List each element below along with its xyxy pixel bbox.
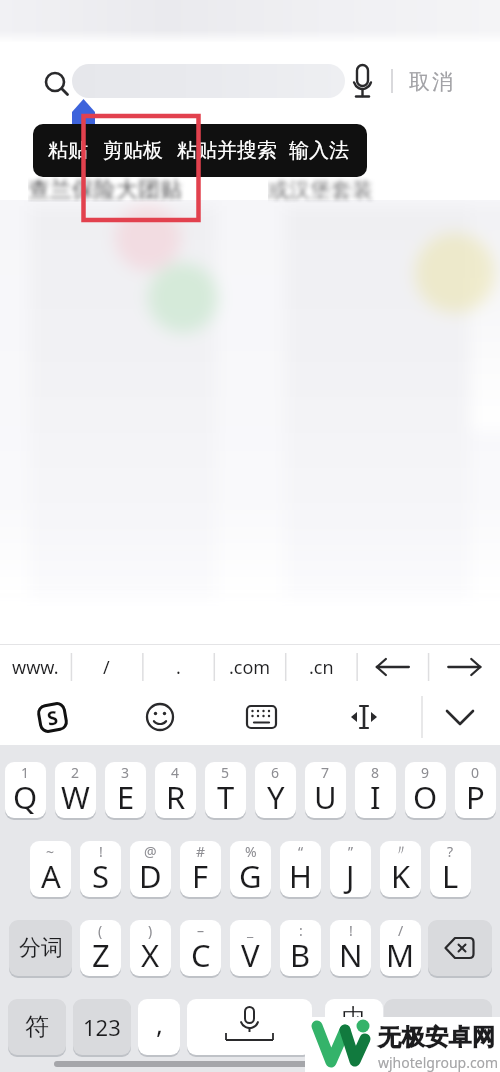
staticText: ” — [348, 842, 354, 861]
button[interactable]: 6 — [255, 762, 296, 818]
button[interactable]: ) — [130, 920, 171, 976]
button[interactable]: _ — [230, 920, 271, 976]
staticText: 2 — [71, 763, 80, 782]
staticText: , — [156, 1006, 163, 1041]
staticText: @ — [144, 842, 157, 861]
staticText: L — [442, 855, 459, 897]
staticText: ( — [98, 921, 103, 940]
button[interactable] — [357, 645, 428, 689]
staticText: wjhotelgroup.com — [378, 1053, 499, 1072]
staticText: _ — [247, 921, 254, 940]
staticText: P — [466, 776, 485, 818]
staticText: Q — [13, 776, 38, 818]
button[interactable]: 7 — [305, 762, 346, 818]
button[interactable]: ” — [330, 841, 371, 897]
button[interactable]: – — [180, 920, 221, 976]
button[interactable]: www. — [0, 645, 71, 689]
button[interactable] — [432, 690, 488, 744]
button[interactable]: 粘贴并搜索 — [177, 138, 277, 163]
staticText: / — [103, 655, 110, 680]
button[interactable] — [233, 690, 289, 744]
button[interactable]: 3 — [105, 762, 146, 818]
button[interactable] — [429, 645, 500, 689]
staticText: B — [290, 934, 311, 976]
staticText: T — [217, 776, 235, 818]
button[interactable]: : — [280, 920, 321, 976]
staticText: D — [139, 855, 162, 897]
button[interactable]: ( — [80, 920, 121, 976]
staticText: 取消 — [408, 69, 454, 95]
staticText: / — [398, 921, 404, 940]
button[interactable]: 4 — [155, 762, 196, 818]
button[interactable]: % — [230, 841, 271, 897]
button[interactable]: 〃 — [380, 841, 421, 897]
staticText: K — [391, 855, 411, 897]
button[interactable]: , — [138, 999, 180, 1055]
staticText: 分词 — [19, 934, 63, 962]
staticText: ! — [99, 842, 103, 861]
staticText: S — [92, 855, 110, 897]
button[interactable]: 粘贴 — [48, 138, 88, 163]
staticText: 无极安卓网 — [378, 1023, 496, 1052]
staticText: C — [191, 934, 211, 976]
button[interactable]: 9 — [405, 762, 446, 818]
button[interactable] — [384, 999, 492, 1055]
button[interactable]: ~ — [30, 841, 71, 897]
staticText: 或汉堡套装 — [268, 177, 373, 203]
staticText: .com — [229, 655, 271, 680]
button[interactable]: 2 — [55, 762, 96, 818]
staticText: ! — [349, 921, 353, 940]
staticText: 6 — [271, 763, 280, 782]
staticText: 中 — [342, 1003, 366, 1033]
staticText: ~ — [46, 842, 55, 861]
button[interactable] — [336, 690, 392, 744]
button[interactable]: .cn — [286, 645, 357, 689]
button[interactable]: 123 — [73, 999, 131, 1055]
button[interactable]: 符 — [8, 999, 66, 1055]
staticText: S — [45, 704, 60, 732]
button[interactable]: # — [180, 841, 221, 897]
staticText: A — [41, 855, 61, 897]
staticText: # — [196, 842, 206, 861]
button[interactable] — [428, 920, 492, 976]
staticText: W — [61, 776, 90, 818]
button[interactable]: 5 — [205, 762, 246, 818]
button[interactable] — [72, 64, 345, 98]
staticText: F — [192, 855, 209, 897]
staticText: 查兰保险大团贴 — [28, 176, 182, 202]
staticText: N — [339, 934, 363, 976]
button[interactable]: / — [71, 645, 142, 689]
button[interactable]: 取消 — [408, 69, 454, 95]
button[interactable]: ? — [430, 841, 471, 897]
staticText: ? — [447, 842, 454, 861]
button[interactable]: ! — [80, 841, 121, 897]
button[interactable]: . — [143, 645, 214, 689]
button[interactable]: “ — [280, 841, 321, 897]
staticText: Y — [267, 776, 285, 818]
staticText: O — [413, 776, 438, 818]
staticText: % — [245, 842, 257, 861]
button[interactable]: 1 — [5, 762, 46, 818]
button[interactable]: @ — [130, 841, 171, 897]
staticText: V — [241, 934, 260, 976]
button[interactable]: 分词 — [9, 920, 72, 976]
staticText: 0 — [471, 763, 480, 782]
button[interactable]: 0 — [455, 762, 496, 818]
button[interactable]: 输入法 — [289, 138, 349, 163]
staticText: – — [197, 921, 204, 940]
button[interactable]: 8 — [355, 762, 396, 818]
staticText: www. — [12, 655, 59, 680]
staticText: 8 — [371, 763, 380, 782]
button[interactable]: / — [380, 920, 421, 976]
button[interactable]: .com — [214, 645, 285, 689]
button[interactable]: 剪贴板 — [103, 138, 163, 163]
staticText: 3 — [121, 763, 130, 782]
button[interactable] — [132, 690, 188, 744]
staticText: 5 — [221, 763, 230, 782]
button[interactable]: 中 — [325, 999, 383, 1055]
button[interactable]: S — [36, 701, 69, 734]
staticText: X — [141, 934, 160, 976]
button[interactable] — [187, 999, 312, 1055]
button[interactable]: ! — [330, 920, 371, 976]
staticText: 〃 — [394, 842, 408, 860]
